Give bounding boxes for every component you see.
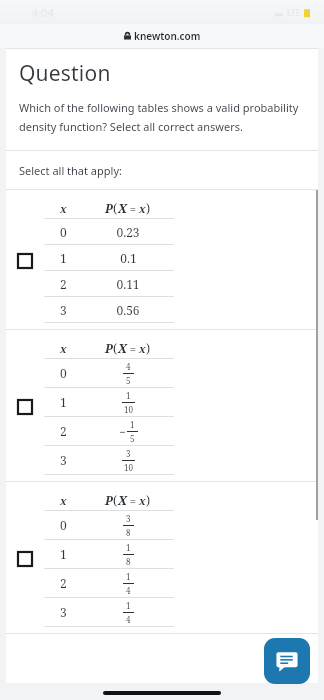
staticText: X bbox=[118, 492, 127, 508]
staticText: 0 bbox=[60, 517, 67, 533]
staticText: 1 bbox=[126, 571, 131, 582]
staticText: X bbox=[118, 340, 127, 356]
staticText: 3 bbox=[60, 452, 67, 468]
staticText: 3 bbox=[126, 513, 131, 524]
staticText: ( bbox=[113, 340, 118, 356]
button[interactable]: Select this option bbox=[6, 330, 318, 481]
staticText: ) bbox=[146, 492, 151, 508]
staticText: 8 bbox=[126, 556, 131, 567]
staticText: 1 bbox=[126, 600, 131, 611]
staticText: ( bbox=[113, 492, 118, 508]
staticText: 3 bbox=[126, 448, 131, 459]
staticText: = bbox=[127, 201, 139, 216]
staticText: ( bbox=[113, 200, 118, 216]
staticText: 1 bbox=[60, 394, 67, 410]
staticText: 2 bbox=[60, 423, 67, 439]
button[interactable]: Open chat support bbox=[264, 638, 310, 684]
staticText: P bbox=[105, 200, 113, 216]
staticText: knewton.com bbox=[134, 29, 201, 43]
staticText: 1 bbox=[126, 390, 131, 401]
staticText: = bbox=[127, 493, 139, 508]
staticText: 0 bbox=[60, 365, 67, 381]
staticText: 1 bbox=[60, 250, 67, 266]
staticText: x bbox=[139, 341, 146, 356]
staticText: 0.1 bbox=[120, 250, 137, 266]
staticText: 10 bbox=[124, 404, 133, 415]
staticText: 2 bbox=[60, 276, 67, 292]
staticText: x bbox=[139, 493, 146, 508]
other: Select this option bbox=[18, 254, 32, 268]
staticText: x bbox=[139, 201, 146, 216]
staticText: 0 bbox=[60, 224, 67, 240]
button[interactable]: Select this option bbox=[6, 190, 318, 329]
staticText: − bbox=[119, 424, 126, 439]
staticText: 4 bbox=[126, 361, 131, 372]
button[interactable]: knewton.com bbox=[0, 24, 324, 48]
staticText: x bbox=[60, 341, 67, 356]
staticText: 1 bbox=[130, 419, 135, 430]
button[interactable]: Select this option bbox=[6, 482, 318, 633]
staticText: 5 bbox=[126, 375, 131, 386]
staticText: 2 bbox=[60, 575, 67, 591]
staticText: X bbox=[118, 200, 127, 216]
staticText: Which of the following tables shows a va… bbox=[19, 100, 302, 134]
staticText: 5 bbox=[130, 433, 135, 444]
staticText: Question bbox=[19, 59, 111, 88]
staticText: 3 bbox=[60, 604, 67, 620]
staticText: 4:04 bbox=[32, 5, 54, 20]
other: Select this option bbox=[18, 400, 32, 414]
staticText: P bbox=[105, 492, 113, 508]
staticText: x bbox=[60, 493, 67, 508]
staticText: x bbox=[60, 201, 67, 216]
staticText: 3 bbox=[60, 302, 67, 318]
staticText: LTE bbox=[287, 7, 300, 18]
staticText: Select all that apply: bbox=[19, 163, 122, 178]
staticText: 1 bbox=[126, 542, 131, 553]
staticText: 0.11 bbox=[116, 276, 140, 292]
staticText: 10 bbox=[124, 462, 133, 473]
staticText: = bbox=[127, 341, 139, 356]
staticText: 4 bbox=[126, 585, 131, 596]
staticText: 4 bbox=[126, 614, 131, 625]
staticText: 1 bbox=[60, 546, 67, 562]
other: Select this option bbox=[18, 552, 32, 566]
staticText: 0.56 bbox=[116, 302, 140, 318]
staticText: P bbox=[105, 340, 113, 356]
staticText: ) bbox=[146, 200, 151, 216]
staticText: ) bbox=[146, 340, 151, 356]
staticText: 8 bbox=[126, 527, 131, 538]
staticText: 0.23 bbox=[116, 224, 140, 240]
